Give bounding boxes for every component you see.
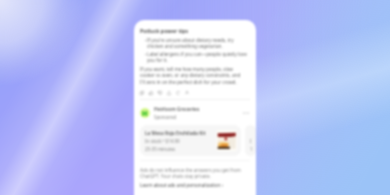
button[interactable]: Share — [167, 91, 171, 95]
button[interactable]: Learn about ads and personalization › — [140, 182, 223, 188]
staticText: In stock • $14.99 — [145, 138, 180, 144]
button[interactable]: Thumbs up — [149, 91, 153, 95]
staticText: Ads do not influence the answers you get… — [140, 167, 248, 179]
staticText: H — [142, 108, 148, 118]
staticText: Heirloom Groceries — [154, 106, 200, 113]
button[interactable]: H — [140, 106, 250, 120]
staticText: La Mesa Roja Enchilada Kit — [145, 130, 206, 136]
staticText: 25-35 minutes — [145, 146, 176, 152]
button[interactable]: Thumbs down — [158, 91, 162, 95]
staticText: Potluck power tips — [140, 27, 189, 34]
staticText: If you're unsure about dietary needs, tr… — [147, 37, 247, 50]
button[interactable]: More options — [242, 109, 250, 117]
button[interactable]: Read aloud — [185, 91, 189, 95]
button[interactable]: Enchilada Sauce Trio — [245, 125, 256, 156]
staticText: Sponsored — [154, 114, 177, 120]
staticText: If you want, tell me how many people, sl… — [140, 66, 246, 86]
button[interactable]: La Mesa Roja Enchilada Kit — [140, 125, 241, 156]
button[interactable]: Copy — [140, 91, 144, 95]
staticText: Label allergens if you can—people quietl… — [147, 51, 247, 64]
